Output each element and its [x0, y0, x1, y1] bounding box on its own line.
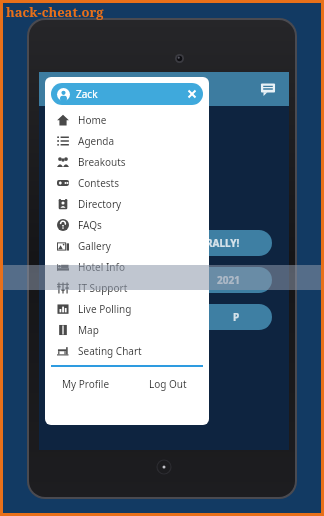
- staticText: RALLY!: [206, 236, 240, 250]
- staticText: Log Out: [149, 377, 187, 391]
- staticText: Seating Chart: [78, 344, 142, 358]
- staticText: My Profile: [62, 377, 110, 391]
- staticText: Hotel Info: [78, 260, 125, 274]
- staticText: Agenda: [78, 134, 115, 148]
- button[interactable]: Messages: [257, 78, 279, 100]
- staticText: Map: [78, 323, 99, 337]
- button[interactable]: Seating Chart: [45, 340, 209, 361]
- staticText: 2021: [217, 273, 240, 287]
- button[interactable]: IT Support: [45, 277, 209, 298]
- button[interactable]: 2021: [57, 267, 272, 293]
- button[interactable]: Breakouts: [45, 151, 209, 172]
- button[interactable]: Contests: [45, 172, 209, 193]
- staticText: Directory: [78, 197, 122, 211]
- staticText: Home: [78, 113, 107, 127]
- button[interactable]: Directory: [45, 193, 209, 214]
- staticText: Zack: [76, 87, 98, 101]
- button[interactable]: Agenda: [45, 130, 209, 151]
- staticText: Contests: [78, 176, 119, 190]
- button[interactable]: Log Out: [127, 375, 209, 393]
- button[interactable]: RALLY!: [57, 230, 272, 256]
- staticText: Gallery: [78, 239, 111, 253]
- staticText: Breakouts: [78, 155, 126, 169]
- staticText: hack-cheat.org: [6, 3, 104, 21]
- button[interactable]: Hotel Info: [45, 256, 209, 277]
- button[interactable]: Gallery: [45, 235, 209, 256]
- button[interactable]: Map: [45, 319, 209, 340]
- staticText: IT Support: [78, 281, 128, 295]
- button[interactable]: Home: [45, 109, 209, 130]
- button[interactable]: Zack: [51, 83, 203, 105]
- button[interactable]: Live Polling: [45, 298, 209, 319]
- staticText: P: [233, 310, 240, 324]
- button[interactable]: P: [57, 304, 272, 330]
- button[interactable]: My Profile: [45, 375, 127, 393]
- staticText: Live Polling: [78, 302, 132, 316]
- button[interactable]: FAQs: [45, 214, 209, 235]
- staticText: FAQs: [78, 218, 102, 232]
